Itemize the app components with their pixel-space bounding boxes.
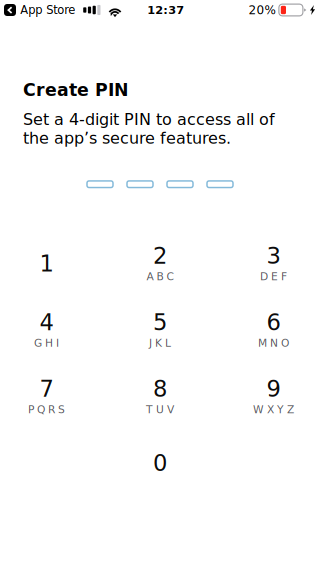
- button[interactable]: App Store: [0, 0, 122, 20]
- button[interactable]: 3: [227, 230, 320, 297]
- staticText: 8: [153, 376, 167, 402]
- staticText: Create PIN: [23, 80, 129, 100]
- button[interactable]: 7: [0, 363, 93, 430]
- button[interactable]: 9: [227, 363, 320, 430]
- staticText: 2: [153, 243, 167, 269]
- staticText: D E F: [260, 270, 287, 283]
- staticText: App Store: [20, 3, 75, 17]
- staticText: G H I: [34, 337, 59, 349]
- staticText: 6: [266, 309, 280, 336]
- staticText: P Q R S: [28, 403, 65, 416]
- button[interactable]: 5: [113, 297, 206, 363]
- button[interactable]: 6: [227, 297, 320, 363]
- staticText: J K L: [149, 337, 171, 349]
- staticText: 1: [39, 251, 53, 277]
- button[interactable]: 0: [113, 430, 206, 496]
- button[interactable]: 4: [0, 297, 93, 363]
- button[interactable]: 1: [0, 230, 93, 297]
- staticText: 7: [39, 376, 53, 402]
- staticText: 3: [266, 243, 280, 269]
- staticText: A B C: [146, 270, 173, 283]
- staticText: Set a 4-digit PIN to access all of the a…: [23, 110, 275, 147]
- staticText: W X Y Z: [253, 403, 294, 416]
- staticText: 20%: [248, 3, 275, 17]
- staticText: T U V: [146, 403, 174, 416]
- button[interactable]: 8: [113, 363, 206, 430]
- staticText: 12:37: [147, 3, 184, 17]
- staticText: 9: [266, 376, 280, 402]
- staticText: 5: [153, 309, 167, 336]
- staticText: 0: [153, 450, 167, 476]
- button[interactable]: 2: [113, 230, 206, 297]
- staticText: M N O: [258, 337, 289, 349]
- staticText: 4: [39, 309, 53, 336]
